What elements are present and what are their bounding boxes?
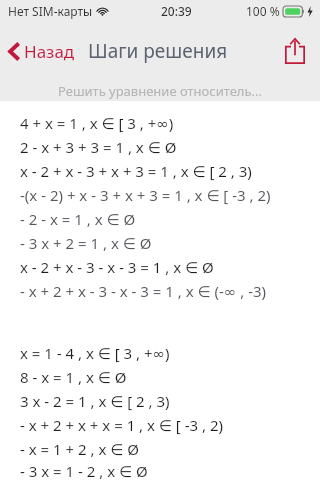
staticText: 2 - x + 3 + 3 = 1 , x ∈ Ø: [20, 137, 177, 157]
staticText: x - 2 + x - 3 - x - 3 = 1 , x ∈ Ø: [20, 257, 214, 277]
staticText: - x + 2 + x - 3 - x - 3 = 1 , x ∈ (-∞ , …: [20, 281, 267, 301]
staticText: Назад: [24, 40, 75, 63]
staticText: Нет SIM-карты: [8, 3, 93, 19]
button[interactable]: 2 - x + 3 + 3 = 1 , x ∈ Ø: [0, 135, 320, 159]
button[interactable]: 8 - x = 1 , x ∈ Ø: [0, 365, 320, 389]
staticText: - x = 1 + 2 , x ∈ Ø: [20, 439, 139, 459]
button[interactable]: x - 2 + x - 3 + x + 3 = 1 , x ∈ [ 2 , 3): [0, 159, 320, 183]
staticText: 8 - x = 1 , x ∈ Ø: [20, 367, 127, 387]
staticText: - 3 x + 2 = 1 , x ∈ Ø: [20, 233, 152, 253]
button[interactable]: Share: [278, 34, 312, 68]
button[interactable]: Назад: [6, 34, 77, 69]
button[interactable]: - x = 1 + 2 , x ∈ Ø: [0, 437, 320, 461]
staticText: - x + 2 + x + x = 1 , x ∈ [ -3 , 2): [20, 415, 223, 435]
button[interactable]: 4 + x = 1 , x ∈ [ 3 , +∞): [0, 111, 320, 135]
staticText: Шаги решения: [88, 38, 228, 64]
button[interactable]: - x + 2 + x - 3 - x - 3 = 1 , x ∈ (-∞ , …: [0, 279, 320, 303]
staticText: 20:39: [161, 3, 192, 19]
staticText: 3 x - 2 = 1 , x ∈ [ 2 , 3): [20, 391, 170, 411]
staticText: x = 1 - 4 , x ∈ [ 3 , +∞): [20, 343, 170, 363]
staticText: -(x - 2) + x - 3 + x + 3 = 1 , x ∈ [ -3 …: [20, 185, 271, 205]
button[interactable]: - 3 x + 2 = 1 , x ∈ Ø: [0, 231, 320, 255]
button[interactable]: - x + 2 + x + x = 1 , x ∈ [ -3 , 2): [0, 413, 320, 437]
staticText: - 2 - x = 1 , x ∈ Ø: [20, 209, 136, 229]
button[interactable]: 3 x - 2 = 1 , x ∈ [ 2 , 3): [0, 389, 320, 413]
button[interactable]: - 3 x = 1 - 2 , x ∈ Ø: [0, 461, 320, 480]
button[interactable]: x = 1 - 4 , x ∈ [ 3 , +∞): [0, 341, 320, 365]
staticText: 100 %: [246, 3, 280, 19]
staticText: Решить уравнение относитель...: [58, 82, 262, 100]
staticText: x - 2 + x - 3 + x + 3 = 1 , x ∈ [ 2 , 3): [20, 161, 252, 181]
button[interactable]: -(x - 2) + x - 3 + x + 3 = 1 , x ∈ [ -3 …: [0, 183, 320, 207]
staticText: 4 + x = 1 , x ∈ [ 3 , +∞): [20, 113, 174, 133]
staticText: - 3 x = 1 - 2 , x ∈ Ø: [20, 461, 148, 480]
button[interactable]: x - 2 + x - 3 - x - 3 = 1 , x ∈ Ø: [0, 255, 320, 279]
button[interactable]: - 2 - x = 1 , x ∈ Ø: [0, 207, 320, 231]
